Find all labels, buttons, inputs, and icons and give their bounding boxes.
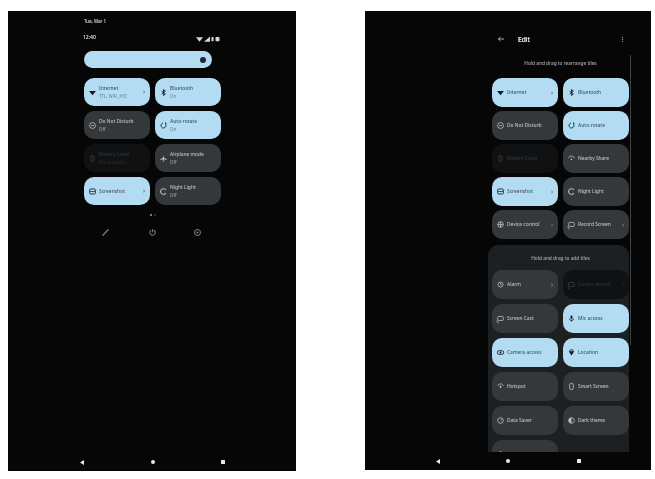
button[interactable]: Screen Cast (492, 304, 558, 333)
staticText: Bluetooth (170, 85, 194, 92)
staticText: Off (170, 192, 177, 198)
staticText: Device control (507, 221, 540, 228)
button[interactable]: Back (431, 454, 445, 468)
staticText: Screenshot (99, 188, 126, 195)
button[interactable]: Dark theme (563, 406, 629, 435)
button[interactable]: Back (75, 455, 89, 469)
staticText: Screen record (578, 281, 610, 288)
button[interactable]: Bluetooth (155, 78, 221, 106)
staticText: Night Light (578, 188, 604, 195)
staticText: Bluetooth (578, 89, 602, 96)
button[interactable]: Data Saver (492, 406, 558, 435)
button[interactable]: Internet (84, 78, 150, 106)
button[interactable]: Screenshot (84, 177, 150, 205)
staticText: Screenshot (507, 188, 534, 195)
staticText: Mic access (578, 315, 603, 322)
button[interactable]: Screen record (563, 270, 629, 299)
staticText: Off (170, 159, 177, 165)
staticText: Off (99, 126, 106, 132)
staticText: Nearby Share (578, 155, 610, 162)
button[interactable]: Brightness (84, 51, 212, 68)
staticText: Screen Cast (507, 315, 534, 322)
staticText: On (170, 126, 177, 132)
staticText: Hotspot (507, 383, 526, 390)
staticText: Edit (518, 35, 531, 44)
staticText: Internet (99, 85, 119, 92)
button[interactable]: Screenshot (492, 177, 558, 206)
button[interactable]: Record Screen (563, 210, 629, 239)
staticText: Auto-rotate (170, 118, 198, 125)
button[interactable]: Camera access (492, 338, 558, 367)
button[interactable]: Battery Saver (492, 144, 558, 173)
staticText: Extra dim (507, 451, 529, 458)
button[interactable]: Edit tiles (97, 224, 113, 240)
button[interactable]: Extra dim (492, 440, 558, 469)
staticText: Battery Saver (99, 151, 130, 158)
staticText: Night Light (170, 184, 196, 191)
button[interactable]: Alarm (492, 270, 558, 299)
staticText: Battery Saver (507, 155, 538, 162)
staticText: Location (578, 349, 599, 356)
staticText: TTL, WiFi_XYZ (99, 93, 127, 99)
staticText: Internet (507, 89, 527, 96)
button[interactable]: Power (144, 224, 160, 240)
staticText: Tue, Mar 1 (84, 18, 107, 24)
button[interactable]: Nearby Share (563, 144, 629, 173)
button[interactable]: Do Not Disturb (492, 111, 558, 140)
button[interactable]: Auto-rotate (155, 111, 221, 139)
staticText: Auto-rotate (578, 122, 606, 129)
button[interactable]: Auto-rotate (563, 111, 629, 140)
button[interactable]: Bluetooth (563, 78, 629, 107)
staticText: 12:40 (83, 34, 96, 41)
staticText: Dark theme (578, 417, 606, 424)
staticText: Data Saver (507, 417, 532, 424)
button[interactable]: Recents (216, 455, 230, 469)
staticText: Smart Screen (578, 383, 609, 390)
button[interactable]: Mic access (563, 304, 629, 333)
button[interactable]: Night Light (563, 177, 629, 206)
button[interactable]: Home (146, 455, 160, 469)
staticText: Not available (99, 159, 126, 165)
button[interactable]: Location (563, 338, 629, 367)
button[interactable]: Recents (572, 454, 586, 468)
staticText: Do Not Disturb (507, 122, 542, 129)
button[interactable]: Do Not Disturb (84, 111, 150, 139)
button[interactable]: Internet (492, 78, 558, 107)
button[interactable]: More options (615, 32, 629, 46)
button[interactable]: Night Light (155, 177, 221, 205)
button[interactable]: Settings (189, 224, 205, 240)
button[interactable]: Battery Saver (84, 144, 150, 172)
button[interactable]: Back (494, 32, 508, 46)
button[interactable]: Home (501, 454, 515, 468)
staticText: Hold and drag to add tiles (492, 255, 629, 262)
button[interactable]: Device control (492, 210, 558, 239)
staticText: Alarm (507, 281, 521, 288)
button[interactable]: Hotspot (492, 372, 558, 401)
staticText: Camera access (507, 349, 542, 356)
staticText: Hold and drag to rearrange tiles (492, 60, 629, 67)
staticText: Airplane mode (170, 151, 204, 158)
button[interactable]: Smart Screen (563, 372, 629, 401)
staticText: On (170, 93, 177, 99)
staticText: Record Screen (578, 221, 611, 228)
staticText: Do Not Disturb (99, 118, 134, 125)
button[interactable]: Airplane mode (155, 144, 221, 172)
